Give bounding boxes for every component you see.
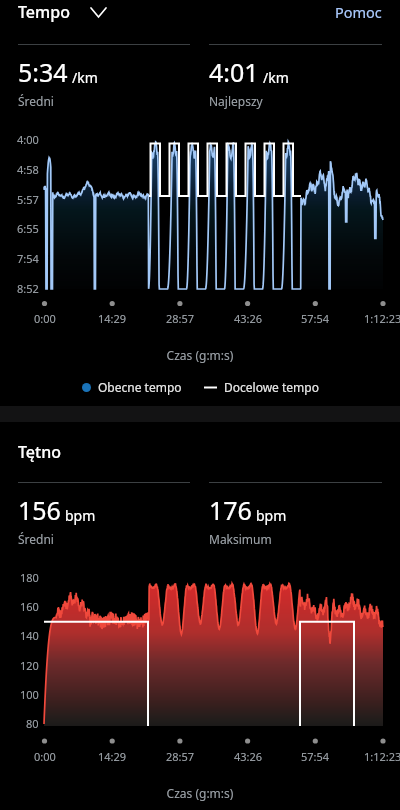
staticText: Maksimum: [209, 531, 272, 547]
staticText: 0:00: [34, 749, 56, 764]
other: Rozwiń: [91, 8, 106, 17]
staticText: /km: [72, 68, 98, 87]
staticText: Obecne tempo: [98, 379, 182, 395]
button[interactable]: 4:01: [209, 44, 382, 109]
staticText: Czas (g:m:s): [0, 347, 400, 363]
button[interactable]: Tempo: [18, 1, 106, 23]
staticText: 6:55: [17, 221, 39, 236]
button[interactable]: 156: [18, 482, 190, 547]
staticText: 7:54: [17, 251, 39, 266]
staticText: 100: [20, 687, 39, 702]
staticText: 5:57: [17, 192, 39, 207]
staticText: 8:52: [17, 281, 39, 296]
staticText: 57:54: [301, 311, 330, 326]
button[interactable]: Tętno: [18, 441, 61, 463]
staticText: 176: [209, 493, 252, 527]
staticText: bpm: [256, 506, 287, 525]
staticText: 43:26: [234, 749, 263, 764]
staticText: 80: [26, 716, 39, 731]
staticText: Tętno: [18, 441, 61, 463]
staticText: 28:57: [166, 311, 195, 326]
staticText: Najlepszy: [209, 93, 263, 109]
staticText: 14:29: [98, 311, 127, 326]
staticText: bpm: [65, 506, 96, 525]
staticText: 0:00: [34, 311, 56, 326]
staticText: 180: [20, 570, 39, 585]
staticText: Docelowe tempo: [224, 379, 319, 395]
staticText: Średni: [18, 531, 54, 547]
staticText: 14:29: [98, 749, 127, 764]
staticText: /km: [263, 68, 289, 87]
staticText: Tempo: [18, 1, 70, 23]
staticText: 120: [20, 658, 39, 673]
button[interactable]: 5:34: [18, 44, 190, 109]
staticText: 4:00: [17, 132, 39, 147]
button[interactable]: Obecne tempo: [82, 379, 182, 395]
staticText: 160: [20, 599, 39, 614]
button[interactable]: Pomoc: [335, 2, 382, 22]
staticText: Czas (g:m:s): [0, 785, 400, 801]
button[interactable]: Docelowe tempo: [204, 379, 319, 395]
staticText: 4:58: [17, 162, 39, 177]
staticText: 156: [18, 493, 61, 527]
staticText: 4:01: [209, 55, 259, 89]
staticText: Średni: [18, 93, 54, 109]
staticText: 28:57: [166, 749, 195, 764]
staticText: 43:26: [234, 311, 263, 326]
staticText: 140: [20, 628, 39, 643]
staticText: 5:34: [18, 55, 68, 89]
staticText: Pomoc: [335, 2, 382, 22]
staticText: 1:12:23: [364, 749, 400, 764]
staticText: 57:54: [301, 749, 330, 764]
staticText: 1:12:23: [364, 311, 400, 326]
button[interactable]: 176: [209, 482, 382, 547]
